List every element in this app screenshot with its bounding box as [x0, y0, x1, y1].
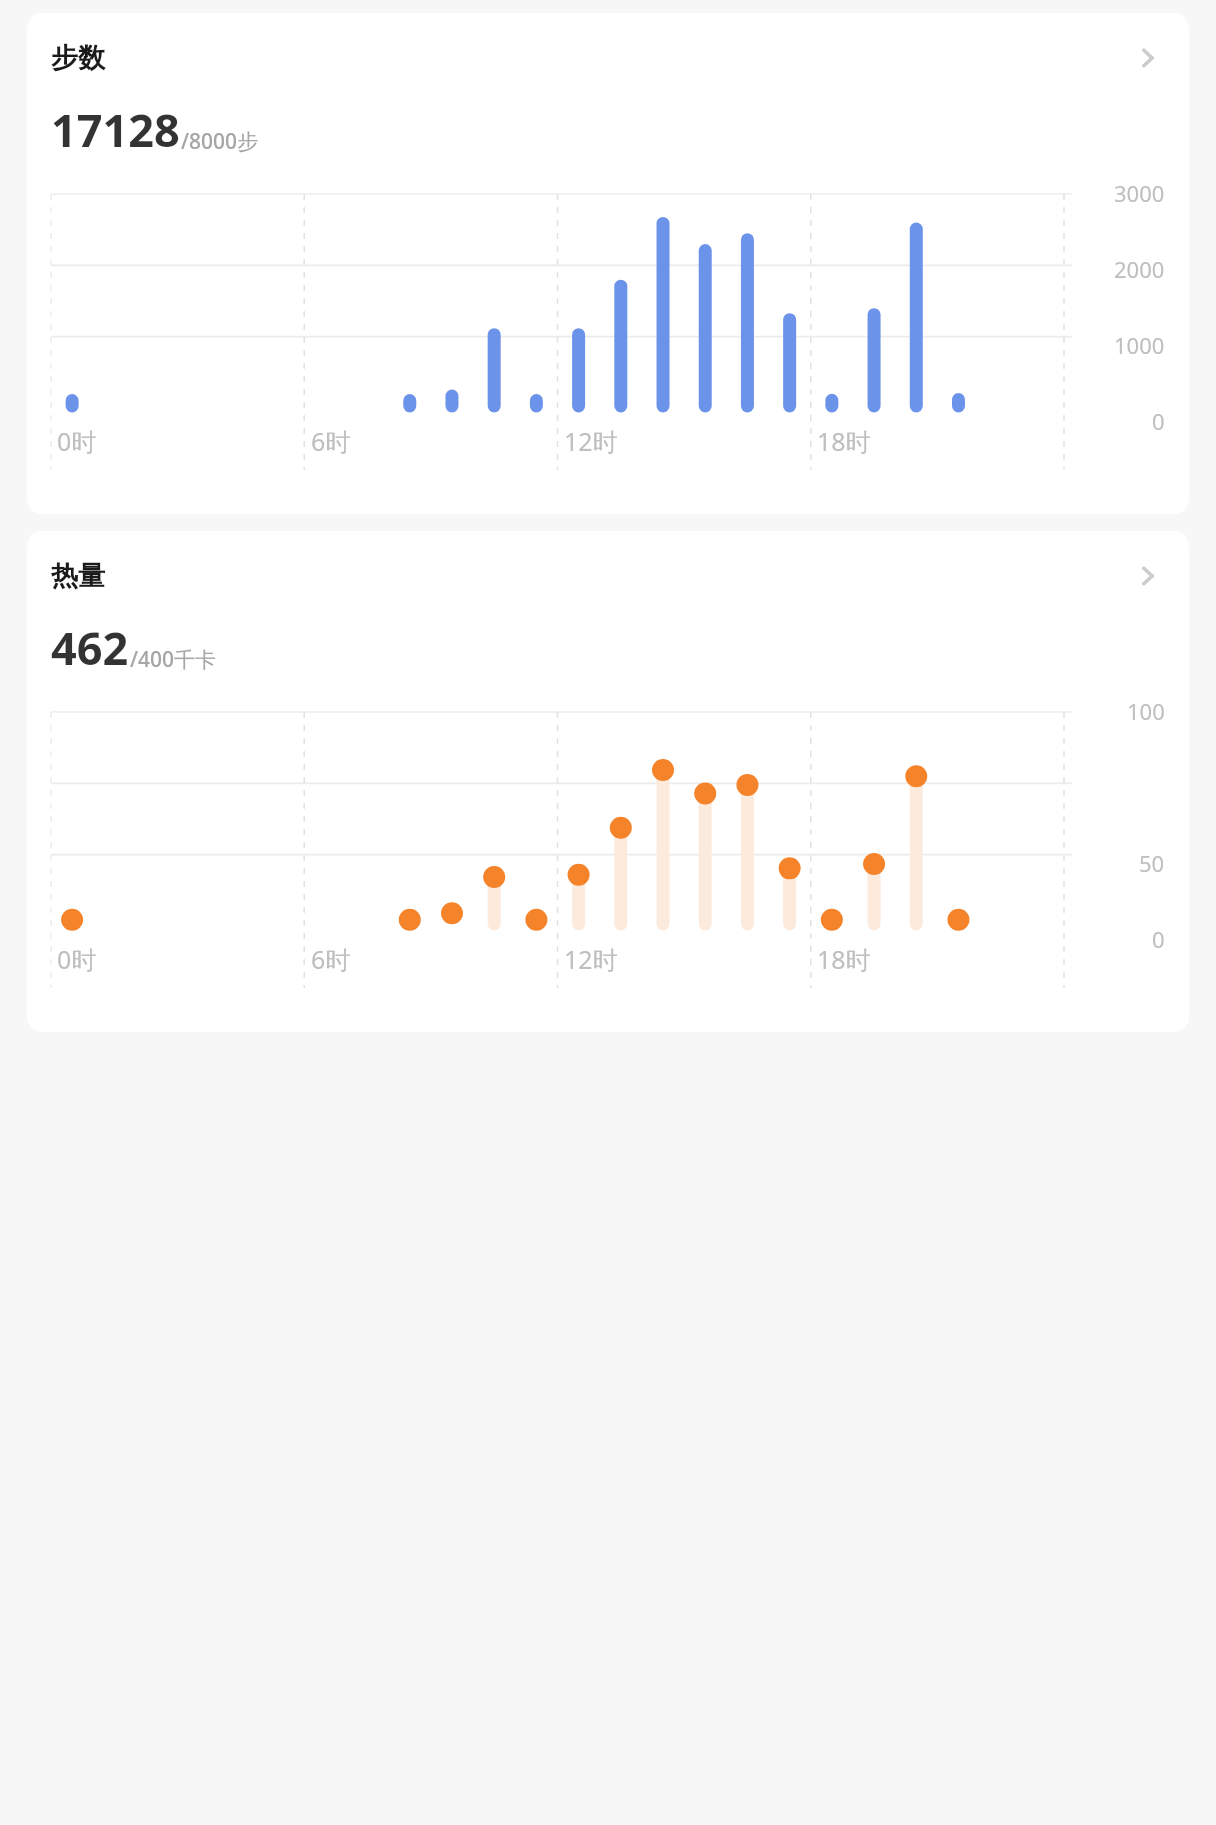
- button[interactable]: 步数: [27, 13, 1189, 514]
- staticText: 0时: [57, 942, 97, 976]
- staticText: 50: [1139, 848, 1165, 878]
- staticText: 步数: [51, 41, 105, 75]
- staticText: /8000步: [181, 127, 259, 156]
- staticText: 0时: [57, 424, 97, 458]
- staticText: /400千卡: [130, 645, 217, 674]
- staticText: 17128: [51, 99, 180, 160]
- button[interactable]: 查看详情: [1129, 557, 1167, 595]
- staticText: 462: [51, 617, 129, 678]
- button[interactable]: 查看详情: [1129, 39, 1167, 77]
- staticText: 1000: [1114, 330, 1165, 360]
- button[interactable]: 热量: [27, 531, 1189, 1032]
- staticText: 6时: [311, 942, 351, 976]
- staticText: 3000: [1114, 178, 1165, 208]
- staticText: 18时: [817, 424, 871, 458]
- staticText: 12时: [564, 424, 618, 458]
- staticText: 0: [1152, 924, 1165, 954]
- staticText: 热量: [51, 559, 105, 593]
- staticText: 0: [1152, 406, 1165, 436]
- staticText: 6时: [311, 424, 351, 458]
- staticText: 18时: [817, 942, 871, 976]
- staticText: 12时: [564, 942, 618, 976]
- staticText: 100: [1127, 696, 1165, 726]
- staticText: 2000: [1114, 254, 1165, 284]
